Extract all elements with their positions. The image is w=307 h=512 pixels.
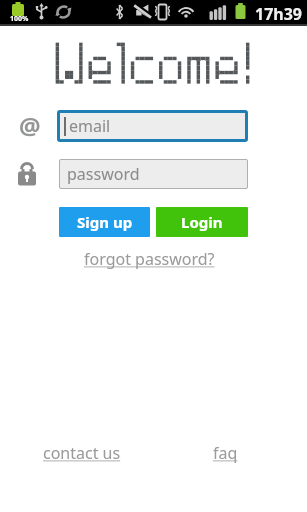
- button[interactable]: email: [57, 110, 248, 142]
- button[interactable]: password: [59, 159, 248, 189]
- staticText: forgot password?: [84, 248, 215, 270]
- button[interactable]: faq: [213, 442, 238, 464]
- staticText: 17h39: [255, 3, 303, 25]
- staticText: Login: [181, 212, 223, 232]
- staticText: password: [67, 163, 140, 185]
- button[interactable]: forgot password?: [0, 248, 303, 270]
- staticText: contact us: [43, 442, 121, 464]
- staticText: Sign up: [77, 212, 133, 232]
- button[interactable]: Login: [156, 207, 248, 237]
- button[interactable]: Sign up: [59, 207, 150, 237]
- button[interactable]: contact us: [43, 442, 121, 464]
- staticText: faq: [213, 442, 238, 464]
- staticText: email: [69, 115, 111, 137]
- staticText: 100%: [10, 14, 29, 24]
- staticText: @: [19, 109, 41, 142]
